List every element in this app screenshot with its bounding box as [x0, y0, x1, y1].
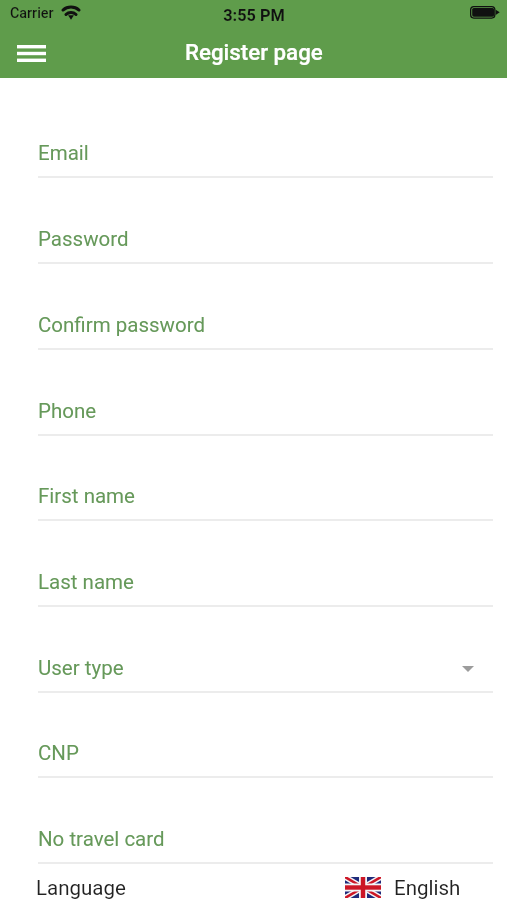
- staticText: Carrier: [10, 5, 54, 21]
- staticText: Phone: [38, 397, 97, 423]
- staticText: English: [394, 874, 461, 900]
- button[interactable]: User type: [0, 606, 507, 692]
- staticText: Language: [36, 874, 126, 900]
- staticText: First name: [38, 482, 135, 508]
- button[interactable]: Confirm password: [0, 263, 507, 349]
- button[interactable]: Phone: [0, 349, 507, 435]
- staticText: Password: [38, 225, 129, 251]
- button[interactable]: Open navigation menu: [6, 30, 56, 74]
- staticText: 3:55 PM: [223, 6, 285, 25]
- staticText: CNP: [38, 739, 79, 765]
- button[interactable]: CNP: [0, 691, 507, 777]
- button[interactable]: No travel card: [0, 777, 507, 863]
- staticText: User type: [38, 654, 124, 680]
- staticText: Email: [38, 139, 89, 165]
- button[interactable]: Email: [0, 91, 507, 177]
- button[interactable]: First name: [0, 434, 507, 520]
- button[interactable]: Last name: [0, 520, 507, 606]
- staticText: Confirm password: [38, 311, 205, 337]
- staticText: Last name: [38, 568, 134, 594]
- button[interactable]: Language: [0, 865, 507, 900]
- staticText: Register page: [185, 38, 323, 66]
- button[interactable]: Password: [0, 177, 507, 263]
- staticText: No travel card: [38, 825, 165, 851]
